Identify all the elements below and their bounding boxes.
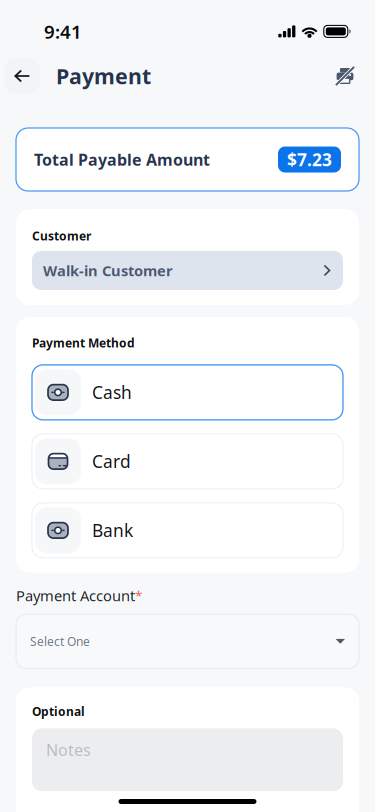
staticText: Customer [32, 228, 91, 244]
staticText: Walk-in Customer [43, 261, 173, 280]
staticText: Payment Account [16, 586, 135, 605]
button[interactable]: Back [4, 58, 40, 93]
button[interactable]: Walk-in Customer [32, 251, 343, 290]
button[interactable]: Card [32, 434, 343, 489]
staticText: 9:41 [44, 19, 82, 44]
staticText: Total Payable Amount [34, 149, 210, 170]
button[interactable]: Cash [32, 365, 343, 420]
staticText: Payment [56, 62, 151, 90]
staticText: Optional [32, 703, 85, 719]
staticText: Cash [92, 381, 132, 404]
staticText: Bank [92, 519, 133, 542]
button[interactable]: Bank [32, 503, 343, 558]
staticText: $7.23 [287, 148, 332, 171]
staticText: Payment Method [32, 335, 135, 351]
staticText: * [135, 587, 142, 604]
button[interactable]: Select One [16, 614, 359, 668]
button[interactable]: Printing disabled [328, 61, 362, 91]
staticText: Notes [46, 739, 91, 760]
staticText: Card [92, 450, 131, 473]
staticText: Select One [30, 633, 90, 649]
